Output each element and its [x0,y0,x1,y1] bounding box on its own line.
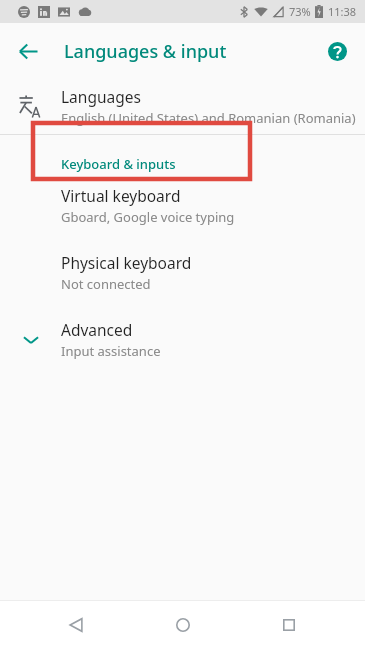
staticText: English (United States) and Romanian (Ro… [61,109,356,127]
staticText: Input assistance [61,342,161,360]
button[interactable]: Home [153,601,213,648]
button[interactable]: Virtual keyboard [0,175,365,234]
staticText: 11:38 [328,4,357,19]
staticText: Gboard, Google voice typing [61,208,235,226]
button[interactable]: Back [46,601,106,648]
button[interactable]: Recent apps [259,601,319,648]
button[interactable]: Help [317,31,357,71]
staticText: Keyboard & inputs [61,155,176,173]
staticText: Advanced [61,319,133,340]
staticText: Virtual keyboard [61,185,181,206]
staticText: 73% [289,4,311,19]
staticText: Languages & input [64,39,227,64]
staticText: Languages [61,86,141,107]
staticText: Not connected [61,275,151,293]
button[interactable]: Back [8,31,48,71]
staticText: Physical keyboard [61,252,192,273]
button[interactable]: Advanced [0,301,365,368]
button[interactable]: Physical keyboard [0,234,365,301]
button[interactable]: Languages [0,79,365,134]
